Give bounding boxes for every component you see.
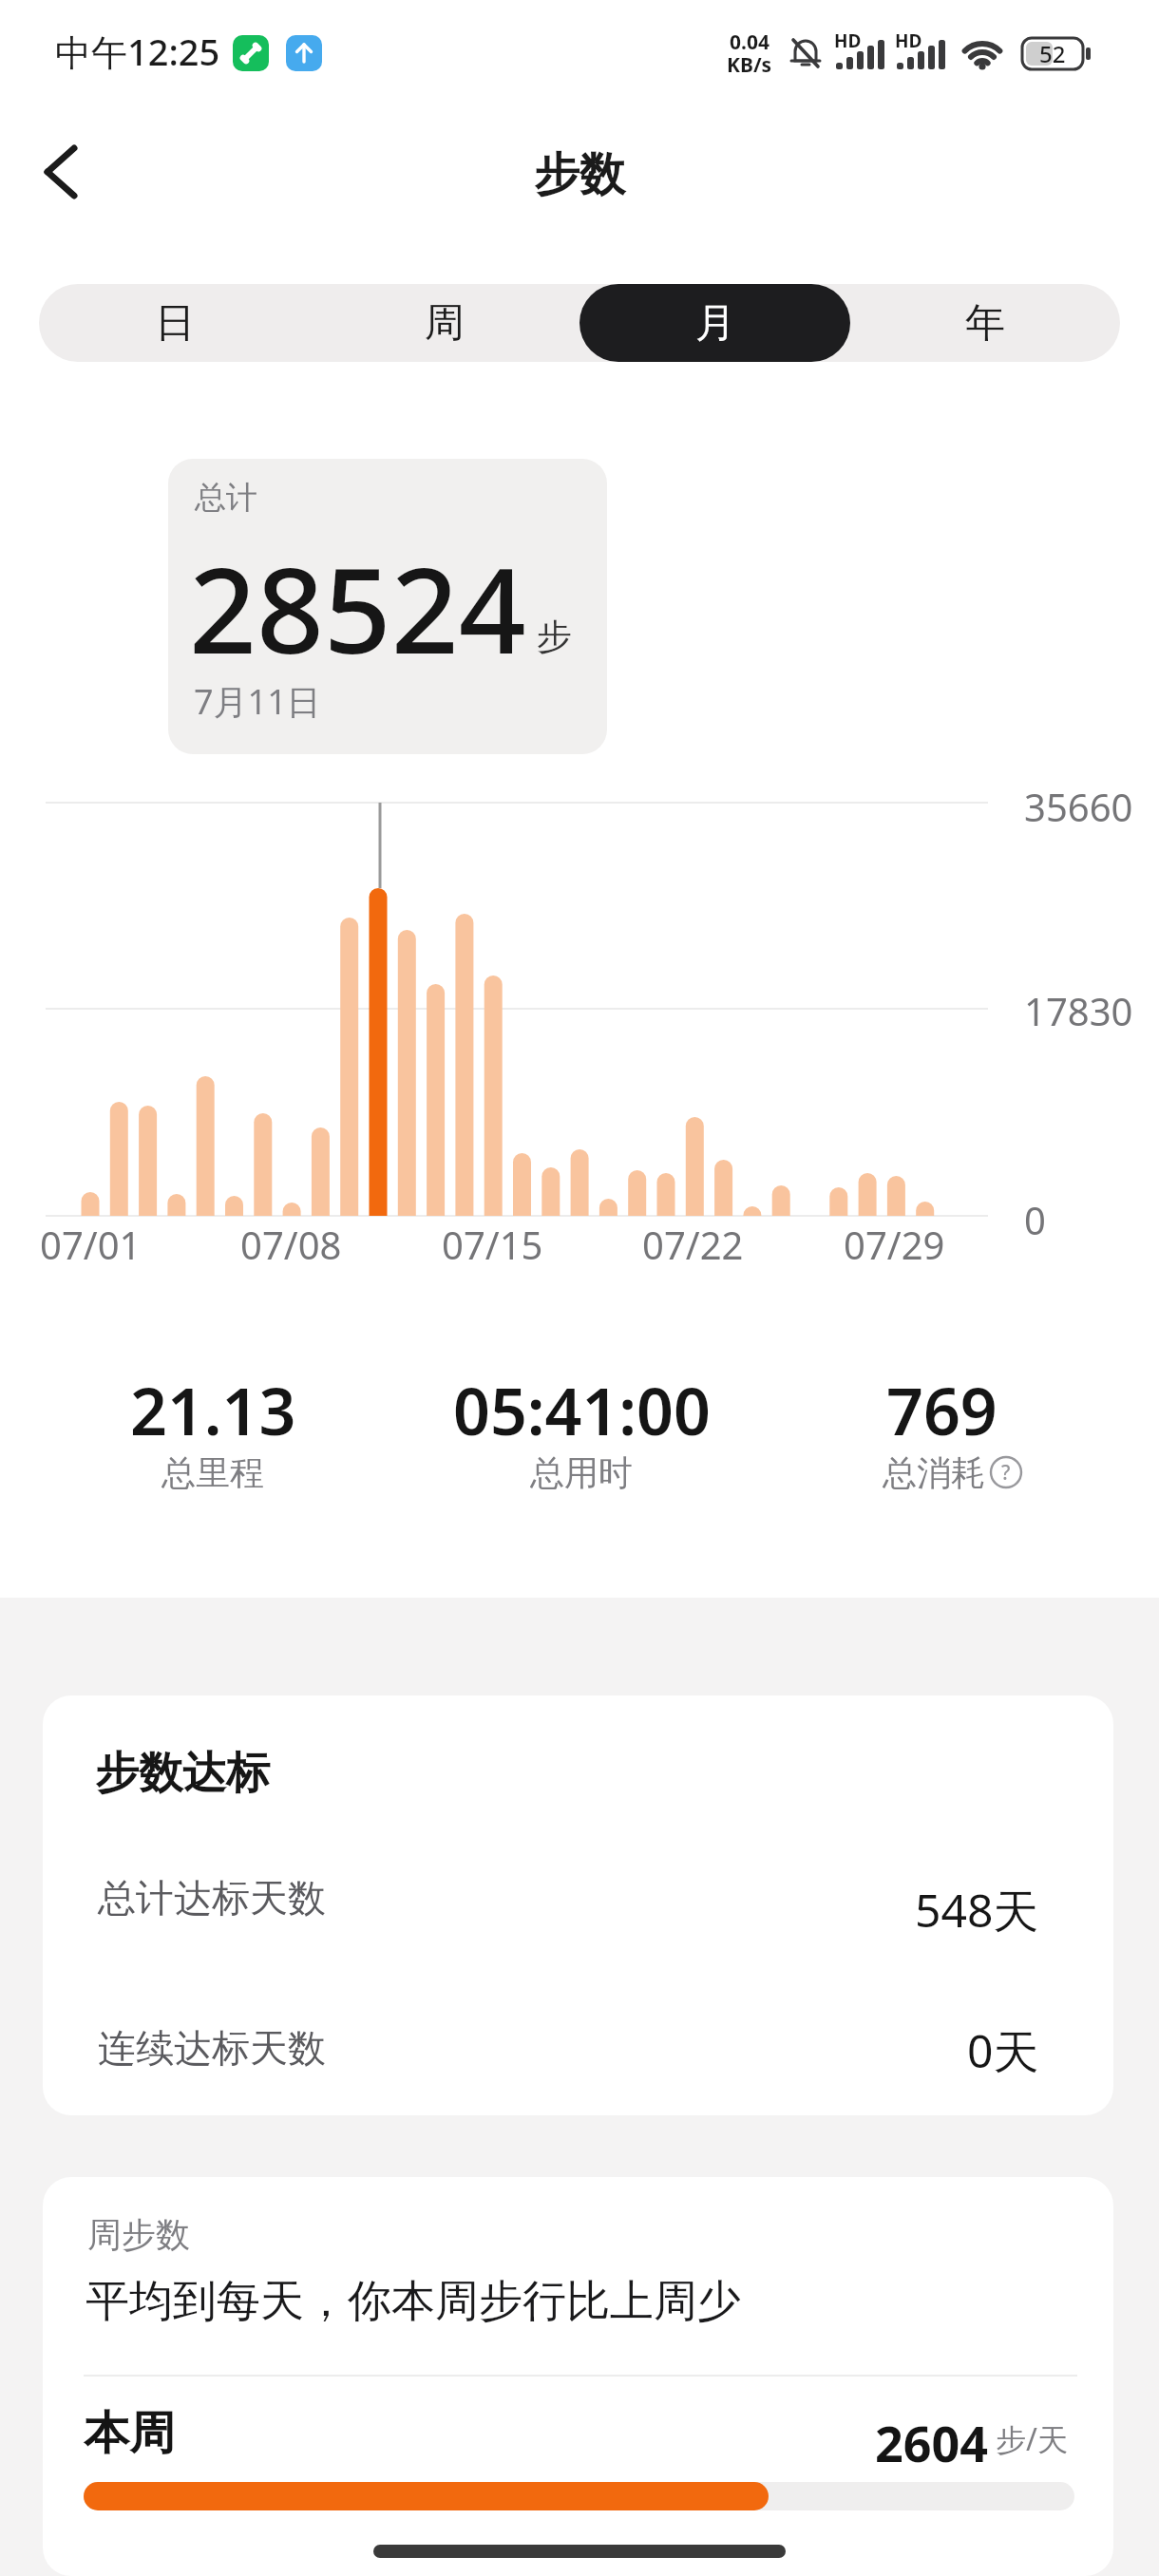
staticText: 连续达标天数	[98, 2024, 326, 2072]
staticText: 548天	[915, 1879, 1039, 1938]
staticText: 总用时	[530, 1451, 633, 1493]
staticText: 月	[695, 298, 735, 349]
staticText: 0天	[967, 2019, 1039, 2078]
button[interactable]: 年	[849, 284, 1120, 362]
staticText: ?	[1001, 1459, 1011, 1487]
button[interactable]: ?	[989, 1455, 1023, 1489]
staticText: 07/29	[844, 1219, 945, 1266]
staticText: KB/s	[727, 51, 772, 76]
staticText: 年	[965, 298, 1005, 349]
button[interactable]: 日	[39, 284, 310, 362]
staticText: 0	[1024, 1194, 1046, 1240]
staticText: 本周	[84, 2405, 175, 2462]
staticText: 步数	[534, 146, 625, 203]
staticText: 07/22	[642, 1219, 744, 1266]
staticText: 7月11日	[194, 678, 321, 725]
button[interactable]: 周	[309, 284, 579, 362]
staticText: 总消耗	[883, 1451, 985, 1493]
staticText: 总里程	[161, 1451, 264, 1493]
staticText: 总计	[195, 478, 257, 518]
staticText: 21.13	[130, 1366, 296, 1440]
button[interactable]	[28, 137, 97, 205]
staticText: 52	[1039, 38, 1066, 69]
staticText: 17830	[1024, 985, 1133, 1031]
staticText: HD	[834, 28, 862, 49]
staticText: 07/01	[40, 1219, 142, 1266]
staticText: 周	[425, 298, 465, 349]
staticText: 769	[886, 1366, 997, 1440]
staticText: 日	[155, 298, 195, 349]
staticText: 07/08	[240, 1219, 342, 1266]
staticText: 35660	[1024, 781, 1133, 826]
staticText: 0.04	[730, 28, 769, 53]
staticText: 步	[537, 615, 572, 659]
staticText: 总计达标天数	[98, 1874, 326, 1922]
staticText: HD	[895, 28, 922, 49]
staticText: 05:41:00	[453, 1366, 711, 1440]
staticText: 步数达标	[95, 1746, 270, 1801]
staticText: 2604	[875, 2409, 988, 2466]
staticText: 平均到每天，你本周步行比上周少	[85, 2274, 741, 2329]
staticText: 周步数	[87, 2213, 190, 2256]
button[interactable]: 月	[579, 284, 850, 362]
staticText: 28524	[189, 527, 526, 670]
staticText: 步/天	[996, 2418, 1068, 2460]
staticText: 07/15	[442, 1219, 543, 1266]
staticText: 中午12:25	[55, 27, 220, 76]
